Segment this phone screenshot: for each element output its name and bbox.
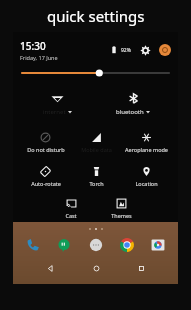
button[interactable]: Back bbox=[41, 259, 59, 277]
staticText: 15:30 bbox=[20, 39, 46, 53]
staticText: quick settings bbox=[47, 6, 145, 26]
button[interactable]: Apps bbox=[88, 237, 104, 253]
button[interactable]: Messages bbox=[56, 237, 72, 253]
button[interactable]: Aeroplane mode bbox=[121, 127, 171, 157]
staticText: Location bbox=[135, 180, 158, 187]
staticText: 92% bbox=[121, 47, 131, 54]
button[interactable]: Mobile data bbox=[71, 127, 121, 157]
button[interactable]: User bbox=[159, 44, 171, 56]
button[interactable]: Themes bbox=[96, 195, 146, 222]
staticText: Aeroplane mode bbox=[125, 146, 168, 153]
button[interactable]: Phone bbox=[25, 237, 41, 253]
button[interactable]: Brightness bbox=[20, 67, 171, 79]
button[interactable]: Torch bbox=[71, 161, 121, 191]
staticText: Mobile data bbox=[81, 146, 112, 153]
button[interactable]: Recents bbox=[132, 259, 150, 277]
staticText: internet bbox=[43, 108, 66, 116]
button[interactable]: Auto-rotate bbox=[20, 161, 71, 191]
button[interactable]: Settings bbox=[139, 44, 152, 57]
staticText: bluetooth bbox=[116, 108, 144, 116]
button[interactable]: internet bbox=[20, 87, 95, 121]
button[interactable]: Location bbox=[121, 161, 171, 191]
button[interactable]: Camera bbox=[150, 237, 166, 253]
button[interactable]: Cast bbox=[46, 195, 96, 222]
staticText: Friday, 17 June bbox=[20, 54, 58, 61]
staticText: Do not disturb bbox=[27, 146, 65, 153]
staticText: Auto-rotate bbox=[31, 180, 61, 187]
staticText: Torch bbox=[89, 180, 104, 187]
button[interactable]: Home bbox=[87, 259, 105, 277]
button[interactable]: Chrome bbox=[119, 237, 135, 253]
button[interactable]: bluetooth bbox=[95, 87, 171, 121]
button[interactable]: Do not disturb bbox=[20, 127, 71, 157]
staticText: Cast bbox=[65, 212, 77, 219]
staticText: Themes bbox=[111, 212, 132, 219]
